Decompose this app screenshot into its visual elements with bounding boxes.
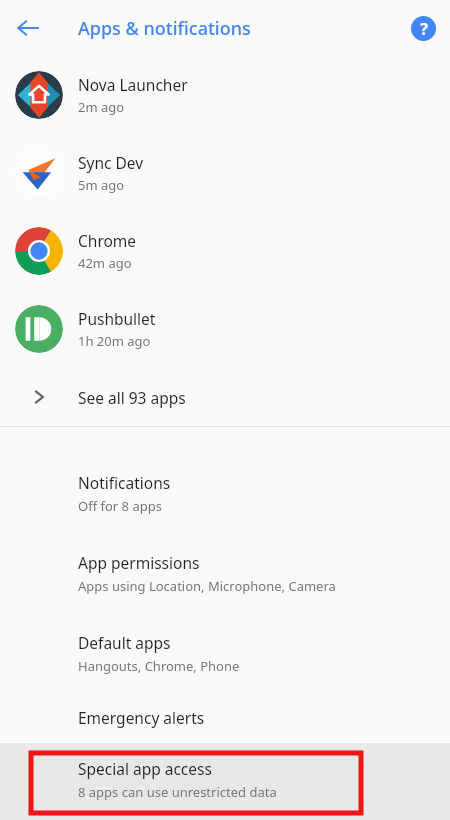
staticText: App permissions <box>78 552 200 573</box>
staticText: Pushbullet <box>78 308 156 329</box>
button[interactable]: See all 93 apps <box>0 368 450 426</box>
button[interactable]: App permissions <box>0 533 450 613</box>
staticText: 1h 20m ago <box>78 332 151 350</box>
button[interactable]: Nova Launcher <box>0 56 450 134</box>
staticText: Hangouts, Chrome, Phone <box>78 657 240 675</box>
staticText: See all 93 apps <box>78 387 186 408</box>
staticText: Special app access <box>78 758 212 779</box>
button[interactable]: Emergency alerts <box>0 693 450 742</box>
staticText: Notifications <box>78 472 171 493</box>
staticText: ? <box>420 18 428 40</box>
button[interactable]: Back <box>4 4 52 52</box>
button[interactable]: Pushbullet <box>0 290 450 368</box>
button[interactable]: Notifications <box>0 453 450 533</box>
button[interactable]: Chrome <box>0 212 450 290</box>
button[interactable]: Default apps <box>0 613 450 693</box>
button[interactable]: Help <box>399 4 447 52</box>
staticText: Emergency alerts <box>78 707 205 728</box>
button[interactable]: Special app access <box>0 743 450 820</box>
staticText: 8 apps can use unrestricted data <box>78 783 277 801</box>
staticText: Off for 8 apps <box>78 497 162 515</box>
staticText: Nova Launcher <box>78 74 188 95</box>
staticText: Apps using Location, Microphone, Camera <box>78 577 336 595</box>
staticText: 42m ago <box>78 254 132 272</box>
staticText: Sync Dev <box>78 152 144 173</box>
staticText: Default apps <box>78 632 171 653</box>
staticText: Chrome <box>78 230 137 251</box>
staticText: Apps & notifications <box>78 16 251 41</box>
button[interactable]: Sync Dev <box>0 134 450 212</box>
staticText: 5m ago <box>78 176 125 194</box>
staticText: 2m ago <box>78 98 125 116</box>
